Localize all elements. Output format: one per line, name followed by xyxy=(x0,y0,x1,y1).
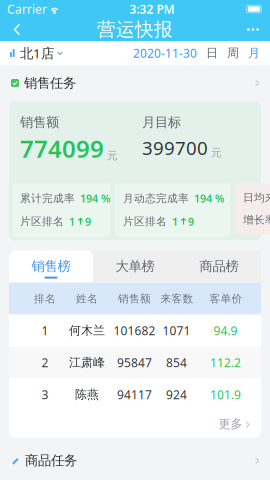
staticText: 客单价 xyxy=(209,292,242,305)
button[interactable]: Back xyxy=(0,18,34,41)
staticText: 774099 xyxy=(20,132,104,164)
staticText: 销售额 xyxy=(118,292,151,305)
staticText: 更多 xyxy=(218,417,242,431)
staticText: 排名 xyxy=(34,292,56,305)
button[interactable]: More xyxy=(236,18,270,41)
staticText: 9 xyxy=(188,214,194,229)
button[interactable]: 2 xyxy=(9,347,261,379)
button[interactable]: 北1店 xyxy=(10,40,63,66)
staticText: Carrier xyxy=(7,1,47,17)
staticText: 元 xyxy=(211,146,222,159)
staticText: 95847 xyxy=(117,355,152,370)
staticText: 营运快报 xyxy=(97,18,173,41)
staticText: 片区排名 xyxy=(20,215,64,228)
staticText: 3:32 PM xyxy=(129,1,174,17)
staticText: 江肃峰 xyxy=(69,355,105,370)
button[interactable]: 月 xyxy=(248,42,260,64)
staticText: 101682 xyxy=(113,323,155,338)
staticText: 销售额 xyxy=(20,114,59,130)
staticText: 112.2 xyxy=(210,355,241,370)
staticText: 1 xyxy=(172,214,178,229)
staticText: 日均来客 xyxy=(243,191,270,204)
staticText: 94.9 xyxy=(213,323,237,338)
staticText: 销售任务 xyxy=(24,75,76,91)
staticText: 何木兰 xyxy=(69,323,105,338)
staticText: 3 xyxy=(41,387,48,402)
staticText: 日 xyxy=(206,46,218,60)
staticText: 9 xyxy=(85,214,91,229)
button[interactable]: 销售任务 xyxy=(0,65,270,101)
staticText: 2020-11-30 xyxy=(133,45,197,61)
button[interactable]: 销售榜 xyxy=(9,251,93,283)
staticText: 1071 xyxy=(162,323,190,338)
staticText: 月目标 xyxy=(142,114,181,130)
staticText: 商品任务 xyxy=(25,452,77,469)
button[interactable]: 商品榜 xyxy=(177,251,261,283)
staticText: 月 xyxy=(248,46,260,60)
staticText: 大单榜 xyxy=(115,258,154,275)
staticText: 增长率 xyxy=(243,213,270,226)
button[interactable]: 3 xyxy=(9,379,261,411)
staticText: 94117 xyxy=(117,387,152,402)
staticText: 924 xyxy=(166,387,187,402)
button[interactable]: 大单榜 xyxy=(93,251,177,283)
button[interactable]: 更多 xyxy=(9,411,261,438)
staticText: 854 xyxy=(166,355,187,370)
staticText: 元 xyxy=(107,149,118,162)
staticText: 周 xyxy=(227,46,239,60)
staticText: 194 % xyxy=(80,191,110,205)
staticText: 商品榜 xyxy=(199,258,238,275)
staticText: 来客数 xyxy=(160,292,193,305)
staticText: 月动态完成率 xyxy=(123,192,189,205)
staticText: 北1店 xyxy=(20,44,54,62)
staticText: 姓名 xyxy=(76,292,98,305)
staticText: 片区排名 xyxy=(123,215,167,228)
staticText: 陈燕 xyxy=(75,387,99,402)
button[interactable]: 日 xyxy=(206,42,218,64)
staticText: 399700 xyxy=(142,135,208,160)
staticText: 2 xyxy=(41,355,48,370)
button[interactable]: 商品任务 xyxy=(0,442,270,480)
staticText: 销售榜 xyxy=(31,258,70,275)
button[interactable]: 1 xyxy=(9,315,261,347)
staticText: 1 xyxy=(69,214,75,229)
button[interactable]: 2020-11-30 xyxy=(133,41,197,65)
staticText: 1 xyxy=(41,323,48,338)
staticText: 101.9 xyxy=(210,387,241,402)
staticText: 累计完成率 xyxy=(20,192,75,205)
staticText: 194 % xyxy=(194,191,224,205)
button[interactable]: 周 xyxy=(227,42,239,64)
